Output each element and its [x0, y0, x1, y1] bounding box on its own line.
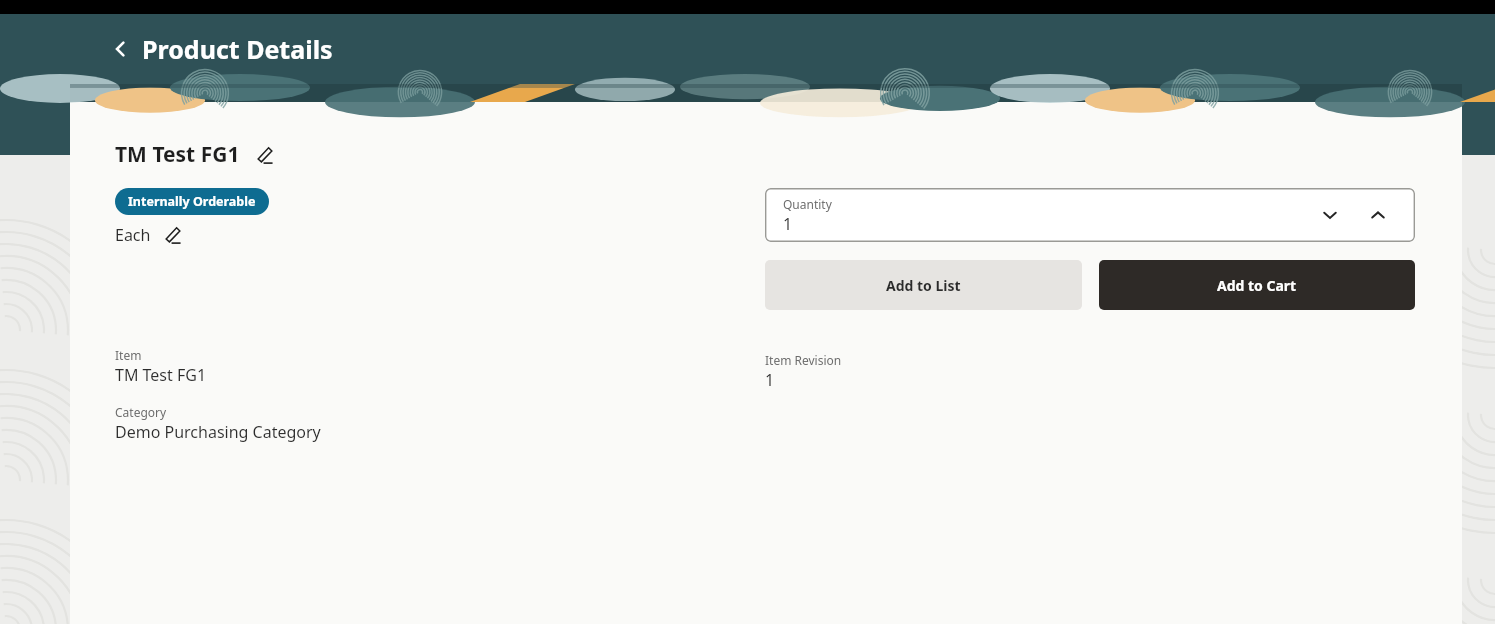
button[interactable]: Add to Cart	[1099, 260, 1415, 310]
staticText: Category	[115, 404, 167, 420]
staticText: Each	[115, 224, 151, 246]
staticText: 1	[783, 213, 793, 235]
button[interactable]: Quantity	[765, 188, 1415, 242]
staticText: Item Revision	[765, 352, 842, 368]
staticText: Item	[115, 347, 142, 363]
staticText: Add to Cart	[1217, 276, 1297, 295]
button[interactable]: Decrease quantity	[1315, 200, 1345, 230]
button[interactable]: Increase quantity	[1363, 200, 1393, 230]
staticText: TM Test FG1	[115, 140, 240, 169]
button[interactable]: Edit unit of measure	[161, 223, 185, 247]
button[interactable]: Internally Orderable	[115, 188, 269, 215]
staticText: Product Details	[142, 32, 333, 66]
staticText: TM Test FG1	[115, 364, 207, 386]
staticText: 1	[765, 369, 775, 391]
button[interactable]: Back	[104, 32, 138, 66]
staticText: Add to List	[886, 276, 961, 295]
staticText: Quantity	[783, 196, 832, 212]
button[interactable]: Edit product name	[252, 142, 278, 168]
staticText: Internally Orderable	[128, 193, 256, 210]
staticText: Demo Purchasing Category	[115, 421, 321, 443]
button[interactable]: Add to List	[765, 260, 1082, 310]
